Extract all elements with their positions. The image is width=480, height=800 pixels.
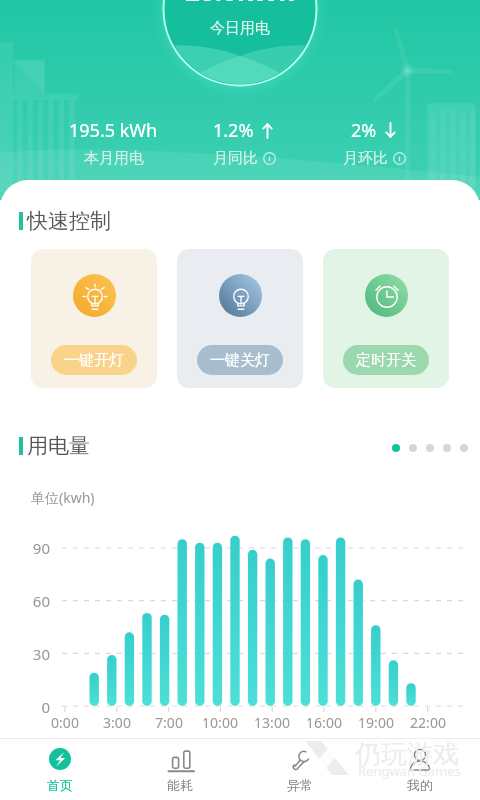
staticText: 用电量	[27, 433, 90, 459]
staticText: 7:00	[143, 713, 195, 732]
staticText: 仍玩游戏	[355, 738, 459, 771]
staticText: 0	[18, 697, 50, 717]
staticText: Rengwan Games	[358, 762, 461, 780]
staticText: 快速控制	[27, 208, 111, 234]
staticText: 今日用电	[210, 19, 270, 38]
button[interactable]: 首页	[0, 746, 120, 793]
button[interactable]: 定时开关	[323, 249, 449, 388]
button[interactable]: Info	[393, 152, 406, 165]
staticText: 90	[18, 538, 50, 558]
staticText: 一键开灯	[64, 351, 124, 370]
staticText: 1.2%	[213, 118, 254, 143]
staticText: 22:00	[402, 713, 454, 732]
button[interactable]: Info	[263, 152, 276, 165]
button[interactable]: 一键开灯	[31, 249, 157, 388]
staticText: 20.0kWh	[185, 0, 296, 8]
staticText: 10:00	[194, 713, 246, 732]
staticText: 能耗	[167, 777, 193, 793]
staticText: 60	[18, 591, 50, 611]
staticText: 一键关灯	[210, 351, 270, 370]
button[interactable]: 一键关灯	[177, 249, 303, 388]
staticText: 首页	[47, 777, 73, 793]
button[interactable]: 我的	[360, 746, 480, 793]
staticText: 0:00	[39, 713, 91, 732]
staticText: 19:00	[350, 713, 402, 732]
staticText: 本月用电	[84, 149, 144, 168]
button[interactable]: 能耗	[120, 746, 240, 793]
staticText: 月环比	[343, 149, 388, 168]
button[interactable]: 异常	[240, 746, 360, 793]
staticText: 195.5 kWh	[69, 118, 158, 143]
staticText: 30	[18, 644, 50, 664]
staticText: 2%	[351, 118, 377, 143]
staticText: 16:00	[298, 713, 350, 732]
staticText: 3:00	[91, 713, 143, 732]
staticText: 定时开关	[356, 351, 416, 370]
staticText: 单位(kwh)	[31, 488, 95, 507]
staticText: 月同比	[213, 149, 258, 168]
staticText: 我的	[407, 777, 433, 793]
staticText: 13:00	[246, 713, 298, 732]
staticText: 异常	[287, 777, 313, 793]
